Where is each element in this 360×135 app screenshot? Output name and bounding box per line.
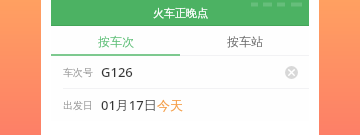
staticText: 今天: [157, 97, 183, 113]
staticText: 车次号: [63, 66, 93, 79]
button[interactable]: Clear train number: [283, 64, 299, 80]
staticText: 出发日: [63, 99, 93, 112]
staticText: 火车正晚点: [153, 6, 208, 20]
button[interactable]: 按车站: [180, 26, 309, 56]
staticText: 01月17日: [101, 96, 157, 114]
staticText: G126: [101, 63, 133, 81]
staticText: 按车站: [227, 34, 263, 49]
button[interactable]: 出发日: [51, 89, 309, 121]
button[interactable]: 按车次: [51, 26, 180, 56]
staticText: 按车次: [98, 34, 134, 49]
button[interactable]: 车次号: [51, 56, 309, 88]
